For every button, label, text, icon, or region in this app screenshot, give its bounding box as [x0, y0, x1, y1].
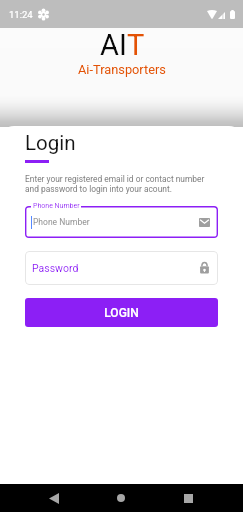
staticText: LOGIN: [104, 306, 139, 320]
button[interactable]: Home: [104, 484, 138, 512]
staticText: Login: [25, 131, 76, 155]
staticText: Password: [32, 262, 79, 274]
staticText: T: [127, 28, 145, 62]
button[interactable]: Password: [25, 251, 218, 285]
staticText: Enter your registered email id or contac…: [25, 174, 205, 194]
button[interactable]: Recents: [171, 484, 205, 512]
staticText: 11:24: [9, 9, 33, 20]
staticText: Phone Number: [33, 202, 80, 210]
staticText: Ai-Transporters: [78, 62, 166, 77]
button[interactable]: LOGIN: [25, 298, 218, 327]
button[interactable]: Back: [37, 484, 71, 512]
staticText: Phone Number: [33, 217, 90, 227]
staticText: AI: [100, 28, 127, 62]
button[interactable]: Phone Number: [25, 206, 218, 238]
